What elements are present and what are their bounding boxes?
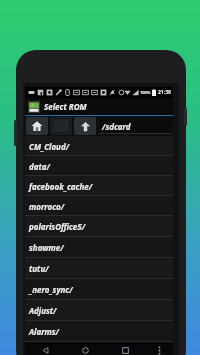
button[interactable]: Home: [65, 342, 105, 355]
button[interactable]: Select ROM: [25, 98, 173, 115]
staticText: data/: [29, 161, 50, 172]
button[interactable]: Up one level: [74, 117, 96, 135]
button[interactable]: showme/: [25, 237, 173, 258]
button[interactable]: CM_Cloud/: [25, 136, 173, 156]
button[interactable]: Alarms/: [25, 321, 173, 342]
button[interactable]: Home directory: [26, 117, 48, 135]
staticText: showme/: [29, 242, 64, 253]
button[interactable]: More options: [145, 342, 173, 355]
button[interactable]: tutu/: [25, 258, 173, 279]
button[interactable]: Adjust/: [25, 300, 173, 321]
staticText: polarisOffice5/: [29, 221, 86, 232]
staticText: Alarms/: [29, 326, 59, 337]
staticText: 100%: [140, 90, 151, 95]
button[interactable]: /sdcard: [99, 118, 172, 134]
button[interactable]: _nero_sync/: [25, 279, 173, 300]
button[interactable]: Bookmark: [50, 117, 72, 135]
staticText: /sdcard: [102, 121, 131, 132]
button[interactable]: polarisOffice5/: [25, 216, 173, 237]
button[interactable]: facebook_cache/: [25, 176, 173, 196]
staticText: Select ROM: [44, 101, 87, 112]
button[interactable]: data/: [25, 156, 173, 176]
staticText: Adjust/: [29, 305, 57, 316]
button[interactable]: morroco/: [25, 196, 173, 216]
staticText: _nero_sync/: [29, 284, 73, 295]
staticText: morroco/: [29, 201, 65, 212]
staticText: 21:39: [158, 89, 171, 96]
button[interactable]: Recent apps: [105, 342, 145, 355]
staticText: tutu/: [29, 263, 49, 274]
staticText: CM_Cloud/: [29, 141, 70, 152]
staticText: facebook_cache/: [29, 181, 93, 192]
button[interactable]: Back: [25, 342, 65, 355]
